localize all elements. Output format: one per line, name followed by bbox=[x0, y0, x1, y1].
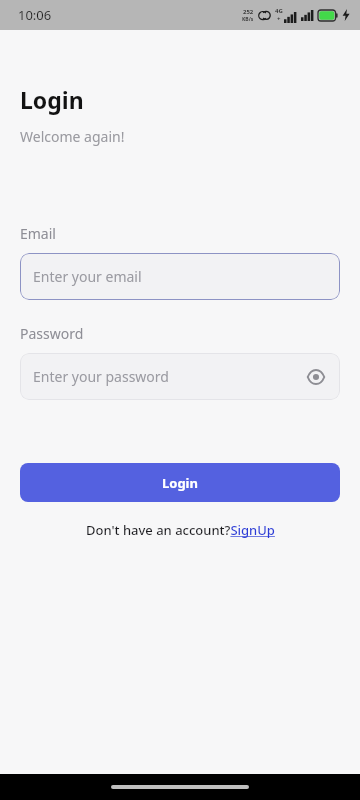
staticText: + bbox=[277, 15, 281, 23]
button[interactable]: Don't have an account?SignUp bbox=[86, 521, 275, 539]
button[interactable]: Show password bbox=[304, 365, 328, 389]
button[interactable]: Login bbox=[20, 463, 340, 502]
staticText: Enter your email bbox=[33, 267, 142, 286]
staticText: Don't have an account?SignUp bbox=[86, 521, 275, 539]
staticText: Password bbox=[20, 324, 84, 343]
staticText: Login bbox=[162, 474, 198, 492]
staticText: 4G bbox=[275, 7, 283, 15]
staticText: KB/s bbox=[242, 16, 254, 23]
button[interactable]: Enter your email bbox=[20, 253, 340, 300]
staticText: Welcome again! bbox=[20, 127, 125, 146]
staticText: Login bbox=[20, 84, 84, 115]
button[interactable]: Enter your password bbox=[20, 353, 340, 400]
staticText: Email bbox=[20, 224, 56, 243]
staticText: Enter your password bbox=[33, 367, 169, 386]
staticText: 252 bbox=[243, 8, 254, 16]
staticText: 10:06 bbox=[18, 6, 52, 24]
